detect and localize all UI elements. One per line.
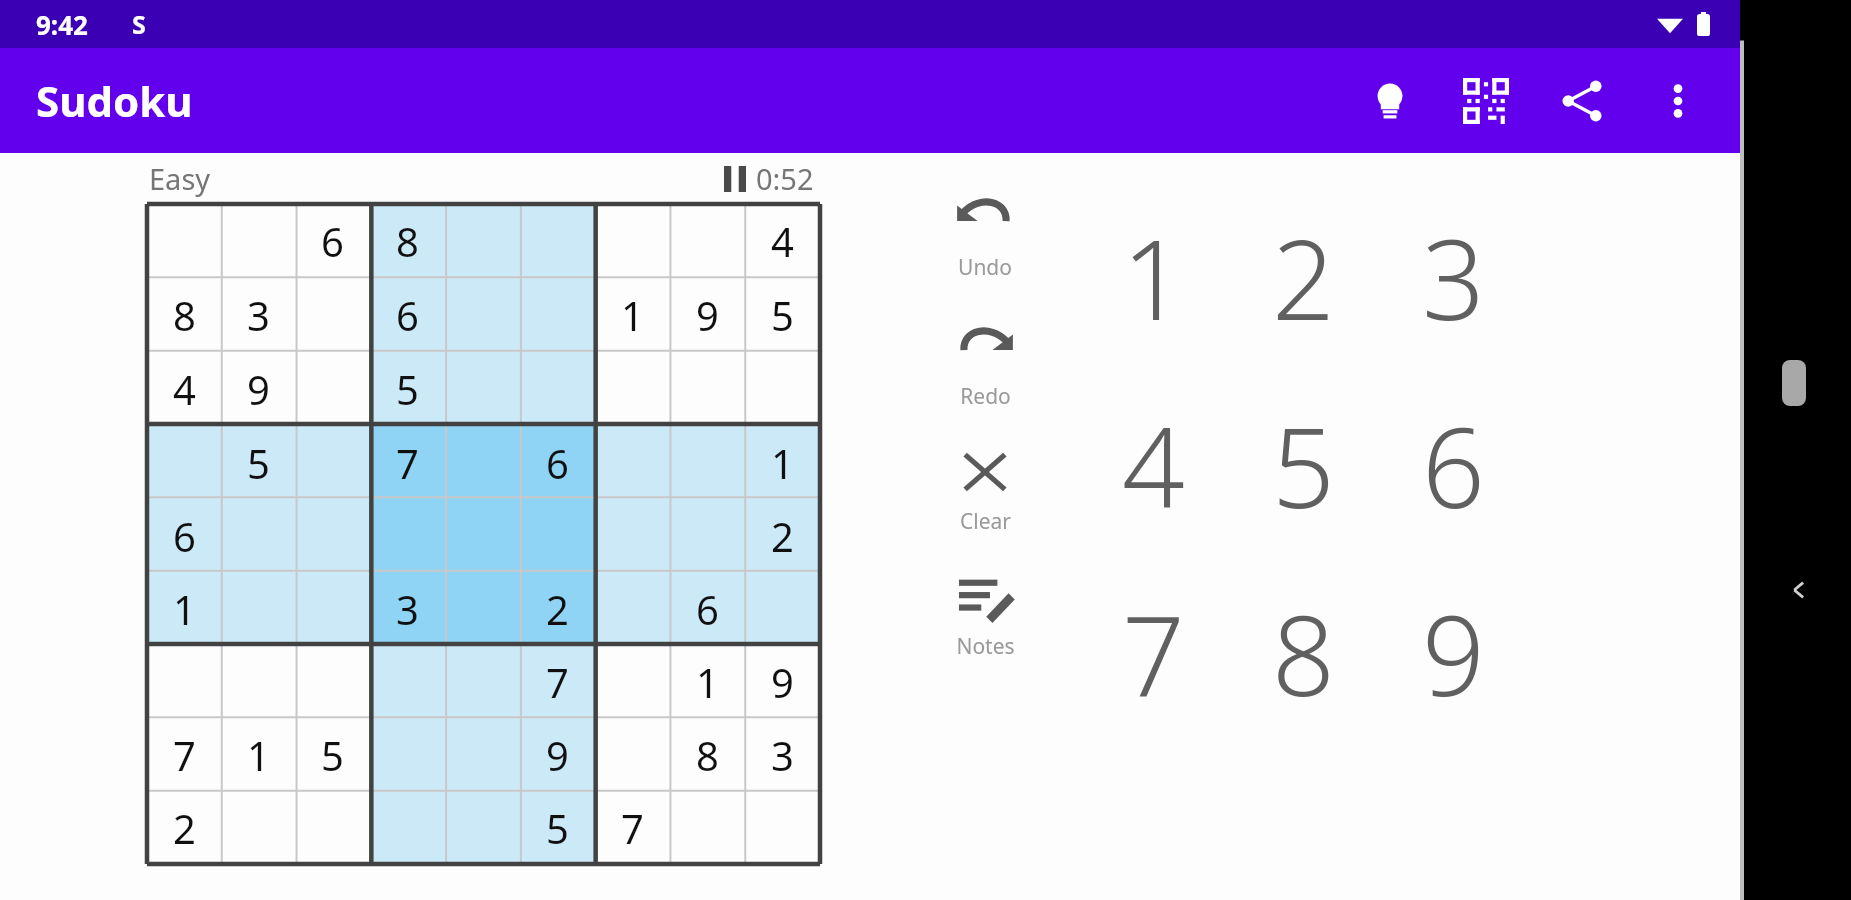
button[interactable]: 6 (295, 204, 370, 278)
button[interactable]: Undo (925, 183, 1045, 286)
button[interactable] (221, 204, 295, 278)
button[interactable]: 3 (745, 718, 820, 791)
button[interactable] (745, 572, 820, 645)
button[interactable]: 7 (370, 426, 445, 499)
button[interactable] (147, 426, 221, 499)
button[interactable] (670, 791, 745, 864)
button[interactable]: 1 (670, 645, 745, 718)
button[interactable] (595, 718, 670, 791)
button[interactable]: 9 (520, 718, 595, 791)
button[interactable]: 9 (745, 645, 820, 718)
button[interactable]: 8 (147, 278, 221, 352)
button[interactable] (221, 572, 295, 645)
button[interactable] (520, 278, 595, 352)
button[interactable] (295, 572, 370, 645)
button[interactable]: 6 (147, 499, 221, 572)
button[interactable] (595, 352, 670, 426)
button[interactable] (595, 204, 670, 278)
button[interactable]: 6 (370, 278, 445, 352)
button[interactable] (445, 645, 520, 718)
button[interactable]: 3 (370, 572, 445, 645)
button[interactable]: Scan QR code (1438, 53, 1534, 149)
button[interactable] (595, 645, 670, 718)
button[interactable] (595, 426, 670, 499)
button[interactable]: 5 (295, 718, 370, 791)
button[interactable] (445, 791, 520, 864)
button[interactable]: 3 (221, 278, 295, 352)
button[interactable]: Drag handle (1782, 360, 1806, 406)
button[interactable] (295, 352, 370, 426)
button[interactable] (670, 499, 745, 572)
button[interactable]: 7 (147, 718, 221, 791)
button[interactable] (670, 426, 745, 499)
button[interactable] (295, 278, 370, 352)
button[interactable]: Clear (925, 437, 1045, 540)
button[interactable]: 9 (670, 278, 745, 352)
button[interactable] (147, 645, 221, 718)
button[interactable] (670, 204, 745, 278)
button[interactable] (445, 572, 520, 645)
button[interactable] (520, 352, 595, 426)
button[interactable] (445, 204, 520, 278)
button[interactable] (445, 718, 520, 791)
button[interactable] (295, 645, 370, 718)
button[interactable]: Back (1770, 560, 1830, 620)
button[interactable] (370, 791, 445, 864)
button[interactable]: 5 (745, 278, 820, 352)
button[interactable]: Notes (925, 562, 1045, 665)
button[interactable]: 1 (595, 278, 670, 352)
button[interactable] (295, 426, 370, 499)
button[interactable]: 6 (670, 572, 745, 645)
button[interactable] (595, 572, 670, 645)
button[interactable]: 2 (745, 499, 820, 572)
button[interactable] (670, 352, 745, 426)
button[interactable]: 5 (520, 791, 595, 864)
button[interactable]: 1 (745, 426, 820, 499)
button[interactable] (445, 426, 520, 499)
button[interactable]: Hint (1342, 53, 1438, 149)
button[interactable]: Pause (720, 159, 818, 198)
button[interactable]: 5 (221, 426, 295, 499)
button[interactable] (221, 499, 295, 572)
button[interactable] (221, 791, 295, 864)
button[interactable]: 8 (670, 718, 745, 791)
button[interactable]: 6 (1378, 371, 1528, 559)
button[interactable]: 1 (1078, 183, 1228, 371)
button[interactable] (445, 499, 520, 572)
button[interactable]: 4 (745, 204, 820, 278)
button[interactable] (520, 499, 595, 572)
button[interactable]: 8 (1228, 559, 1378, 747)
button[interactable] (370, 499, 445, 572)
button[interactable]: 5 (370, 352, 445, 426)
button[interactable]: Share (1534, 53, 1630, 149)
button[interactable] (595, 499, 670, 572)
button[interactable]: 9 (1378, 559, 1528, 747)
button[interactable] (295, 791, 370, 864)
button[interactable] (745, 791, 820, 864)
button[interactable] (445, 352, 520, 426)
button[interactable]: 2 (520, 572, 595, 645)
button[interactable]: More options (1630, 53, 1726, 149)
button[interactable]: 4 (1078, 371, 1228, 559)
button[interactable]: 7 (1078, 559, 1228, 747)
button[interactable]: 8 (370, 204, 445, 278)
button[interactable]: 2 (1228, 183, 1378, 371)
button[interactable]: 7 (595, 791, 670, 864)
button[interactable]: 6 (520, 426, 595, 499)
button[interactable]: 2 (147, 791, 221, 864)
button[interactable]: 4 (147, 352, 221, 426)
button[interactable] (745, 352, 820, 426)
button[interactable]: 5 (1228, 371, 1378, 559)
button[interactable] (370, 645, 445, 718)
button[interactable] (370, 718, 445, 791)
button[interactable] (520, 204, 595, 278)
button[interactable] (295, 499, 370, 572)
button[interactable]: 1 (221, 718, 295, 791)
button[interactable]: 7 (520, 645, 595, 718)
button[interactable] (445, 278, 520, 352)
button[interactable]: 9 (221, 352, 295, 426)
button[interactable]: 1 (147, 572, 221, 645)
button[interactable] (147, 204, 221, 278)
button[interactable] (221, 645, 295, 718)
button[interactable]: 3 (1378, 183, 1528, 371)
